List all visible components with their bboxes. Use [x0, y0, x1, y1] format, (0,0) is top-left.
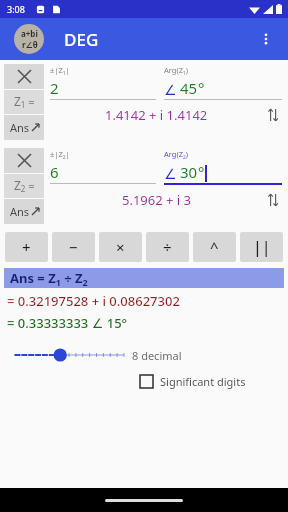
- staticText: Z1 =: [14, 93, 35, 111]
- button[interactable]: −: [52, 232, 95, 262]
- staticText: Z2 =: [14, 177, 35, 195]
- button[interactable]: ∠: [164, 162, 282, 182]
- staticText: r∠θ: [22, 39, 38, 50]
- button[interactable]: Ans = Z1 ÷ Z2: [4, 268, 284, 288]
- button[interactable]: Ans: [4, 199, 44, 224]
- button[interactable]: Significant digits: [140, 374, 246, 389]
- button[interactable]: ×: [99, 232, 142, 262]
- staticText: ||: [253, 236, 271, 258]
- button[interactable]: 6: [50, 162, 156, 182]
- button[interactable]: 2: [50, 78, 156, 98]
- button[interactable]: Ans: [4, 115, 44, 140]
- staticText: ∠: [164, 166, 177, 182]
- button[interactable]: ÷: [146, 232, 189, 262]
- button[interactable]: Clear Z2: [4, 148, 44, 173]
- staticText: 5.1962 + i 3: [122, 191, 192, 209]
- staticText: ^: [210, 237, 219, 257]
- staticText: Ans: [10, 120, 30, 135]
- button[interactable]: ||: [240, 232, 283, 262]
- staticText: Significant digits: [160, 374, 246, 389]
- staticText: 8 decimal: [132, 348, 182, 363]
- staticText: Ans: [10, 204, 30, 219]
- staticText: a+bi: [21, 28, 38, 39]
- staticText: DEG: [64, 28, 99, 51]
- staticText: ∠: [164, 82, 177, 98]
- staticText: +: [22, 237, 31, 257]
- staticText: °: [198, 78, 205, 98]
- button[interactable]: App icon: [14, 24, 44, 54]
- button[interactable]: ∠: [164, 78, 282, 98]
- button[interactable]: = 0.32197528 + i 0.08627302: [7, 292, 180, 310]
- button[interactable]: Decimal precision slider: [14, 342, 124, 368]
- staticText: Arg(Z1): [164, 65, 189, 76]
- button[interactable]: Swap form: [264, 191, 282, 209]
- button[interactable]: Z1 =: [4, 90, 44, 114]
- button[interactable]: = 0.33333333 ∠ 15°: [7, 314, 128, 332]
- button[interactable]: More options: [250, 23, 282, 55]
- staticText: 45: [180, 78, 198, 98]
- staticText: 30: [180, 162, 198, 182]
- button[interactable]: Clear Z1: [4, 64, 44, 89]
- staticText: −: [69, 237, 78, 257]
- staticText: Arg(Z2): [164, 149, 189, 160]
- staticText: ±|Z2|: [50, 149, 70, 160]
- staticText: ÷: [163, 237, 172, 257]
- staticText: 6: [50, 162, 59, 182]
- staticText: 1.4142 + i 1.4142: [105, 106, 208, 124]
- staticText: ×: [116, 237, 125, 257]
- staticText: 3:08: [7, 3, 25, 15]
- staticText: 2: [50, 78, 59, 98]
- staticText: °: [198, 162, 205, 182]
- button[interactable]: Swap form: [264, 106, 282, 124]
- staticText: ±|Z1|: [50, 65, 70, 76]
- button[interactable]: Z2 =: [4, 174, 44, 198]
- staticText: Ans = Z1 ÷ Z2: [10, 269, 88, 288]
- button[interactable]: +: [5, 232, 48, 262]
- button[interactable]: ^: [193, 232, 236, 262]
